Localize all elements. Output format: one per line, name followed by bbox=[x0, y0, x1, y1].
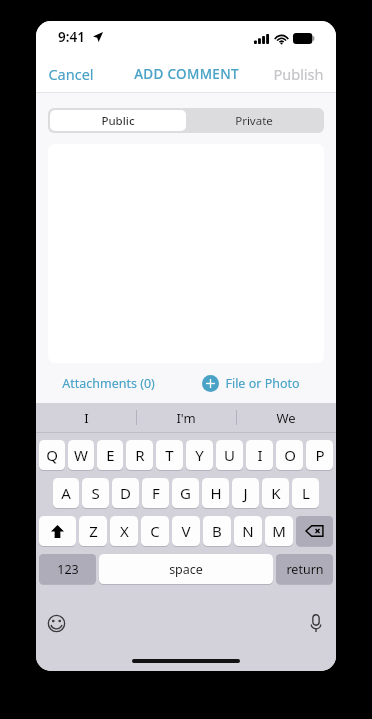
staticText: M bbox=[272, 521, 286, 541]
button[interactable]: space bbox=[99, 554, 273, 585]
button[interactable]: M bbox=[265, 516, 293, 547]
button[interactable]: Emoji bbox=[47, 614, 66, 633]
staticText: A bbox=[61, 483, 71, 503]
staticText: B bbox=[212, 521, 222, 541]
button[interactable]: K bbox=[262, 478, 289, 509]
button[interactable]: A bbox=[53, 478, 79, 509]
button[interactable]: Z bbox=[79, 516, 107, 547]
staticText: S bbox=[91, 483, 100, 503]
staticText: W bbox=[74, 445, 88, 465]
staticText: return bbox=[286, 561, 324, 578]
button[interactable]: I'm bbox=[136, 403, 236, 432]
staticText: space bbox=[169, 561, 203, 578]
button[interactable]: I bbox=[246, 440, 273, 471]
button[interactable]: Cancel bbox=[36, 57, 106, 91]
staticText: Cancel bbox=[48, 64, 94, 84]
button[interactable]: Backspace bbox=[296, 516, 333, 547]
staticText: E bbox=[106, 445, 115, 465]
staticText: O bbox=[284, 445, 296, 465]
staticText: R bbox=[135, 445, 145, 465]
staticText: C bbox=[150, 521, 160, 541]
staticText: Private bbox=[235, 113, 273, 129]
button[interactable]: Publish bbox=[261, 57, 336, 91]
button[interactable]: L bbox=[292, 478, 319, 509]
button[interactable]: 123 bbox=[39, 554, 96, 585]
staticText: Y bbox=[195, 445, 204, 465]
button[interactable]: T bbox=[156, 440, 183, 471]
button[interactable]: Q bbox=[39, 440, 65, 471]
button[interactable]: X bbox=[110, 516, 138, 547]
staticText: X bbox=[120, 521, 129, 541]
staticText: 9:41 bbox=[58, 28, 85, 46]
staticText: 123 bbox=[57, 561, 79, 578]
button[interactable]: Y bbox=[186, 440, 213, 471]
staticText: T bbox=[165, 445, 174, 465]
button[interactable]: U bbox=[216, 440, 243, 471]
staticText: File or Photo bbox=[225, 375, 300, 392]
button[interactable]: N bbox=[234, 516, 262, 547]
staticText: I'm bbox=[176, 409, 196, 427]
button[interactable]: I bbox=[36, 403, 136, 432]
staticText: Z bbox=[89, 521, 98, 541]
button[interactable]: O bbox=[276, 440, 303, 471]
button[interactable]: ADD COMMENT bbox=[126, 58, 247, 90]
staticText: F bbox=[152, 483, 160, 503]
staticText: N bbox=[242, 521, 254, 541]
staticText: Attachments (0) bbox=[62, 375, 155, 392]
staticText: P bbox=[315, 445, 325, 465]
button[interactable]: Dictate bbox=[309, 614, 323, 633]
button[interactable]: D bbox=[112, 478, 139, 509]
button[interactable]: Shift bbox=[39, 516, 76, 547]
button[interactable]: File or Photo bbox=[199, 372, 303, 395]
button[interactable]: J bbox=[232, 478, 259, 509]
button[interactable]: B bbox=[203, 516, 231, 547]
button[interactable]: F bbox=[142, 478, 169, 509]
staticText: I bbox=[257, 445, 263, 465]
staticText: L bbox=[302, 483, 310, 503]
staticText: G bbox=[180, 483, 191, 503]
staticText: I bbox=[84, 409, 89, 427]
button[interactable]: W bbox=[68, 440, 94, 471]
button[interactable]: H bbox=[202, 478, 229, 509]
staticText: Q bbox=[46, 445, 58, 465]
staticText: ADD COMMENT bbox=[134, 65, 239, 83]
staticText: Publish bbox=[273, 64, 324, 84]
staticText: U bbox=[224, 445, 235, 465]
staticText: D bbox=[120, 483, 131, 503]
staticText: J bbox=[243, 483, 248, 503]
staticText: Public bbox=[101, 113, 135, 129]
button[interactable]: V bbox=[172, 516, 200, 547]
button[interactable]: S bbox=[82, 478, 109, 509]
button[interactable]: P bbox=[306, 440, 333, 471]
button[interactable]: Private bbox=[186, 110, 322, 131]
button[interactable]: Attachments (0) bbox=[58, 371, 159, 396]
button[interactable]: return bbox=[276, 554, 333, 585]
button[interactable]: E bbox=[97, 440, 123, 471]
staticText: We bbox=[276, 409, 296, 427]
button[interactable]: Public bbox=[50, 110, 186, 131]
button[interactable]: C bbox=[141, 516, 169, 547]
button[interactable]: We bbox=[236, 403, 336, 432]
button[interactable]: R bbox=[126, 440, 153, 471]
staticText: K bbox=[271, 483, 281, 503]
staticText: H bbox=[210, 483, 222, 503]
button[interactable]: G bbox=[172, 478, 199, 509]
staticText: V bbox=[181, 521, 191, 541]
